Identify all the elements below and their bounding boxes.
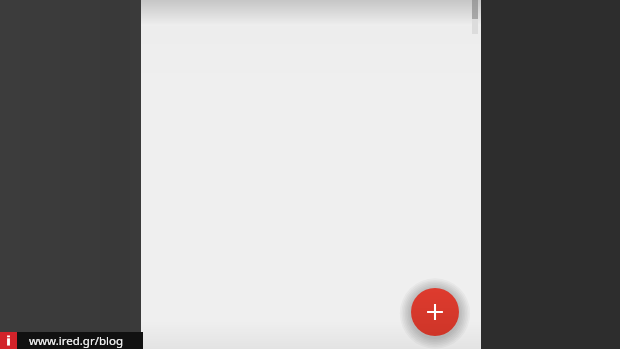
staticText: www.ired.gr/blog — [29, 333, 124, 349]
button[interactable]: Add — [411, 288, 459, 336]
